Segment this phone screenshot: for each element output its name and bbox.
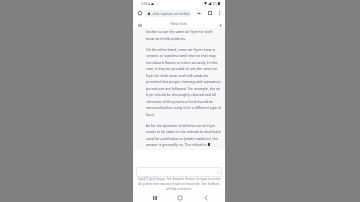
staticText: 3:52 <box>141 2 148 6</box>
staticText: New chat <box>171 21 187 26</box>
staticText: 52% <box>211 2 218 6</box>
button[interactable]: Share <box>195 9 203 17</box>
button[interactable]: Switch tabs <box>206 9 214 17</box>
button[interactable]: Home <box>175 193 184 202</box>
staticText: ChatGPT Jan 9 Version. Free Research Pre… <box>137 177 221 191</box>
staticText: On the other hand, some air fryers have … <box>146 47 215 52</box>
staticText: ceramic or stainless steel interior that… <box>146 53 216 58</box>
staticText: food. <box>146 112 155 117</box>
staticText: used for purification in Jewish traditio… <box>146 136 218 141</box>
button[interactable]: Recent apps <box>150 193 159 202</box>
staticText: meat and milk products. <box>146 36 186 41</box>
button[interactable]: Send message <box>216 170 221 175</box>
staticText: not absorb flavors or odors as easily. I… <box>146 60 218 65</box>
staticText: procedures are followed. For example, th… <box>146 86 221 91</box>
staticText: needs to be taken to the mikvah (a ritua… <box>146 129 221 134</box>
button[interactable]: Open sidebar menu <box>135 21 144 30</box>
staticText: removed before using it for a different … <box>146 105 222 110</box>
staticText: fryer for both meat and milk products, <box>146 73 209 78</box>
button[interactable]: Send message <box>136 167 222 177</box>
staticText: kosher to use the same air fryer for bot… <box>146 29 213 34</box>
staticText: provided that proper cleaning and separa… <box>146 79 221 84</box>
staticText: fryer should be thoroughly cleaned and a… <box>146 92 216 97</box>
button[interactable]: Back <box>201 193 210 202</box>
staticText: chat.openai.com/chat <box>152 11 190 16</box>
button[interactable]: New chat <box>216 21 225 30</box>
button[interactable]: Home <box>136 9 144 17</box>
staticText: As for the question of whether an air fr… <box>146 123 216 128</box>
staticText: case, it may be possible to use the same… <box>146 66 218 71</box>
button[interactable]: chat.openai.com/chat <box>145 10 191 17</box>
button[interactable]: More options <box>215 9 223 17</box>
staticText: remnants of the previous food should be <box>146 99 213 104</box>
staticText: answer is generally no. The mikvah is <box>146 142 208 147</box>
